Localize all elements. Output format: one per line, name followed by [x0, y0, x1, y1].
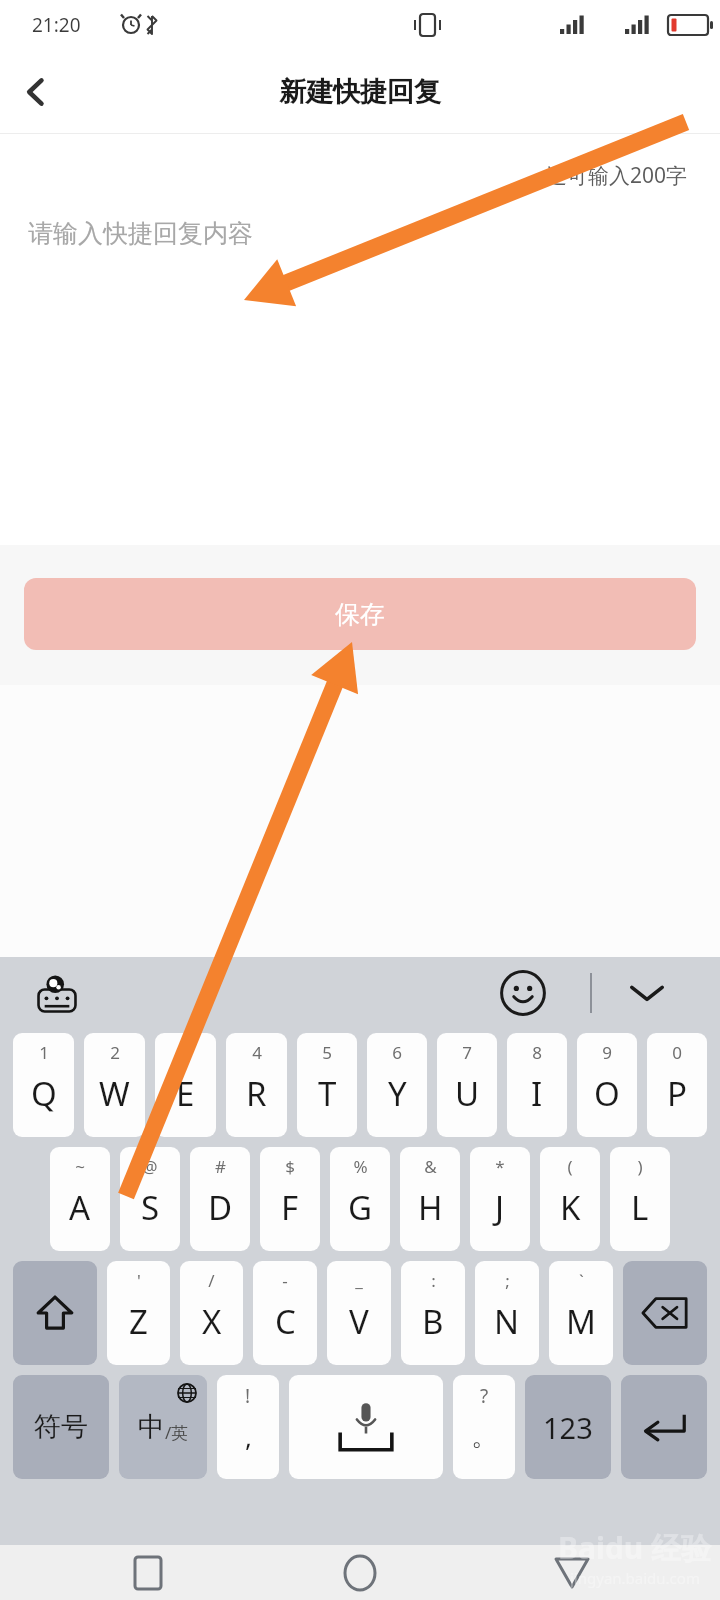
- staticText: 3: [181, 1041, 191, 1064]
- staticText: R: [246, 1071, 267, 1116]
- button[interactable]: 8: [507, 1033, 567, 1137]
- button[interactable]: ?: [453, 1375, 515, 1479]
- button[interactable]: &: [400, 1147, 460, 1251]
- button[interactable]: Input method: [20, 957, 94, 1029]
- button[interactable]: -: [253, 1261, 317, 1365]
- staticText: P: [667, 1071, 687, 1116]
- button[interactable]: 保存: [24, 578, 696, 650]
- button[interactable]: 3: [155, 1033, 216, 1137]
- staticText: 还可输入200字: [546, 161, 688, 190]
- staticText: ?: [480, 1383, 489, 1409]
- button[interactable]: Space: [289, 1375, 443, 1479]
- button[interactable]: 4: [226, 1033, 287, 1137]
- staticText: 9: [602, 1041, 612, 1064]
- button[interactable]: Recents: [120, 1545, 176, 1600]
- staticText: 新建快捷回复: [279, 75, 441, 109]
- staticText: Z: [129, 1299, 148, 1344]
- staticText: /英: [165, 1421, 189, 1444]
- button[interactable]: %: [330, 1147, 390, 1251]
- button[interactable]: 9: [577, 1033, 637, 1137]
- staticText: /: [208, 1269, 215, 1292]
- button[interactable]: 1: [13, 1033, 74, 1137]
- button[interactable]: $: [260, 1147, 320, 1251]
- staticText: 123: [543, 1408, 593, 1447]
- staticText: #: [215, 1155, 226, 1178]
- staticText: jingyan.baidu.com: [570, 1568, 700, 1588]
- button[interactable]: 5: [297, 1033, 357, 1137]
- staticText: ;: [505, 1269, 510, 1292]
- staticText: 8: [532, 1041, 542, 1064]
- button[interactable]: Emoji: [490, 960, 556, 1026]
- button[interactable]: ': [107, 1261, 170, 1365]
- staticText: N: [494, 1299, 520, 1344]
- staticText: Y: [388, 1071, 407, 1116]
- button[interactable]: Home: [332, 1545, 388, 1600]
- staticText: V: [349, 1299, 369, 1344]
- button[interactable]: 中: [119, 1375, 207, 1479]
- staticText: G: [348, 1185, 373, 1230]
- button[interactable]: Hide keyboard: [614, 960, 680, 1026]
- staticText: @: [142, 1155, 158, 1178]
- staticText: %: [353, 1155, 368, 1178]
- button[interactable]: `: [549, 1261, 613, 1365]
- staticText: 21:20: [32, 12, 81, 38]
- button[interactable]: 2: [84, 1033, 145, 1137]
- staticText: C: [275, 1299, 296, 1344]
- button[interactable]: *: [470, 1147, 530, 1251]
- staticText: A: [69, 1185, 91, 1230]
- button[interactable]: /: [180, 1261, 243, 1365]
- staticText: 保存: [335, 599, 385, 630]
- staticText: 2: [110, 1041, 120, 1064]
- staticText: 4: [252, 1041, 262, 1064]
- staticText: 中: [138, 1410, 165, 1444]
- staticText: T: [318, 1071, 337, 1116]
- button[interactable]: Back: [0, 56, 72, 128]
- staticText: *: [495, 1155, 505, 1178]
- staticText: J: [495, 1185, 505, 1230]
- staticText: ): [637, 1155, 643, 1178]
- staticText: ~: [75, 1155, 85, 1178]
- staticText: O: [594, 1071, 620, 1116]
- staticText: !: [245, 1383, 251, 1409]
- staticText: I: [531, 1071, 543, 1116]
- staticText: E: [176, 1071, 195, 1116]
- staticText: L: [631, 1185, 649, 1230]
- staticText: ,: [245, 1419, 252, 1454]
- staticText: K: [560, 1185, 581, 1230]
- button[interactable]: Backspace: [623, 1261, 707, 1365]
- button[interactable]: 7: [437, 1033, 497, 1137]
- staticText: 5: [322, 1041, 332, 1064]
- button[interactable]: ~: [50, 1147, 110, 1251]
- button[interactable]: !: [217, 1375, 279, 1479]
- staticText: 1: [39, 1041, 49, 1064]
- staticText: F: [281, 1185, 299, 1230]
- staticText: Baidu 经验: [558, 1527, 712, 1568]
- staticText: Q: [31, 1071, 57, 1116]
- staticText: M: [566, 1299, 596, 1344]
- staticText: D: [208, 1185, 233, 1230]
- staticText: X: [202, 1299, 222, 1344]
- button[interactable]: 123: [525, 1375, 611, 1479]
- button[interactable]: 符号: [13, 1375, 109, 1479]
- button[interactable]: Back: [544, 1545, 600, 1600]
- button[interactable]: #: [190, 1147, 250, 1251]
- button[interactable]: _: [327, 1261, 391, 1365]
- staticText: $: [285, 1155, 295, 1178]
- staticText: H: [418, 1185, 443, 1230]
- staticText: 6: [392, 1041, 402, 1064]
- staticText: B: [422, 1299, 444, 1344]
- staticText: 请输入快捷回复内容: [28, 218, 253, 249]
- button[interactable]: Enter: [621, 1375, 707, 1479]
- button[interactable]: @: [120, 1147, 180, 1251]
- staticText: (: [567, 1155, 573, 1178]
- staticText: U: [455, 1071, 480, 1116]
- button[interactable]: Shift: [13, 1261, 97, 1365]
- button[interactable]: :: [401, 1261, 465, 1365]
- button[interactable]: ): [610, 1147, 670, 1251]
- button[interactable]: 6: [367, 1033, 427, 1137]
- button[interactable]: (: [540, 1147, 600, 1251]
- button[interactable]: 0: [647, 1033, 707, 1137]
- staticText: W: [99, 1071, 130, 1116]
- button[interactable]: ;: [475, 1261, 539, 1365]
- button[interactable]: 请输入快捷回复内容: [28, 218, 692, 398]
